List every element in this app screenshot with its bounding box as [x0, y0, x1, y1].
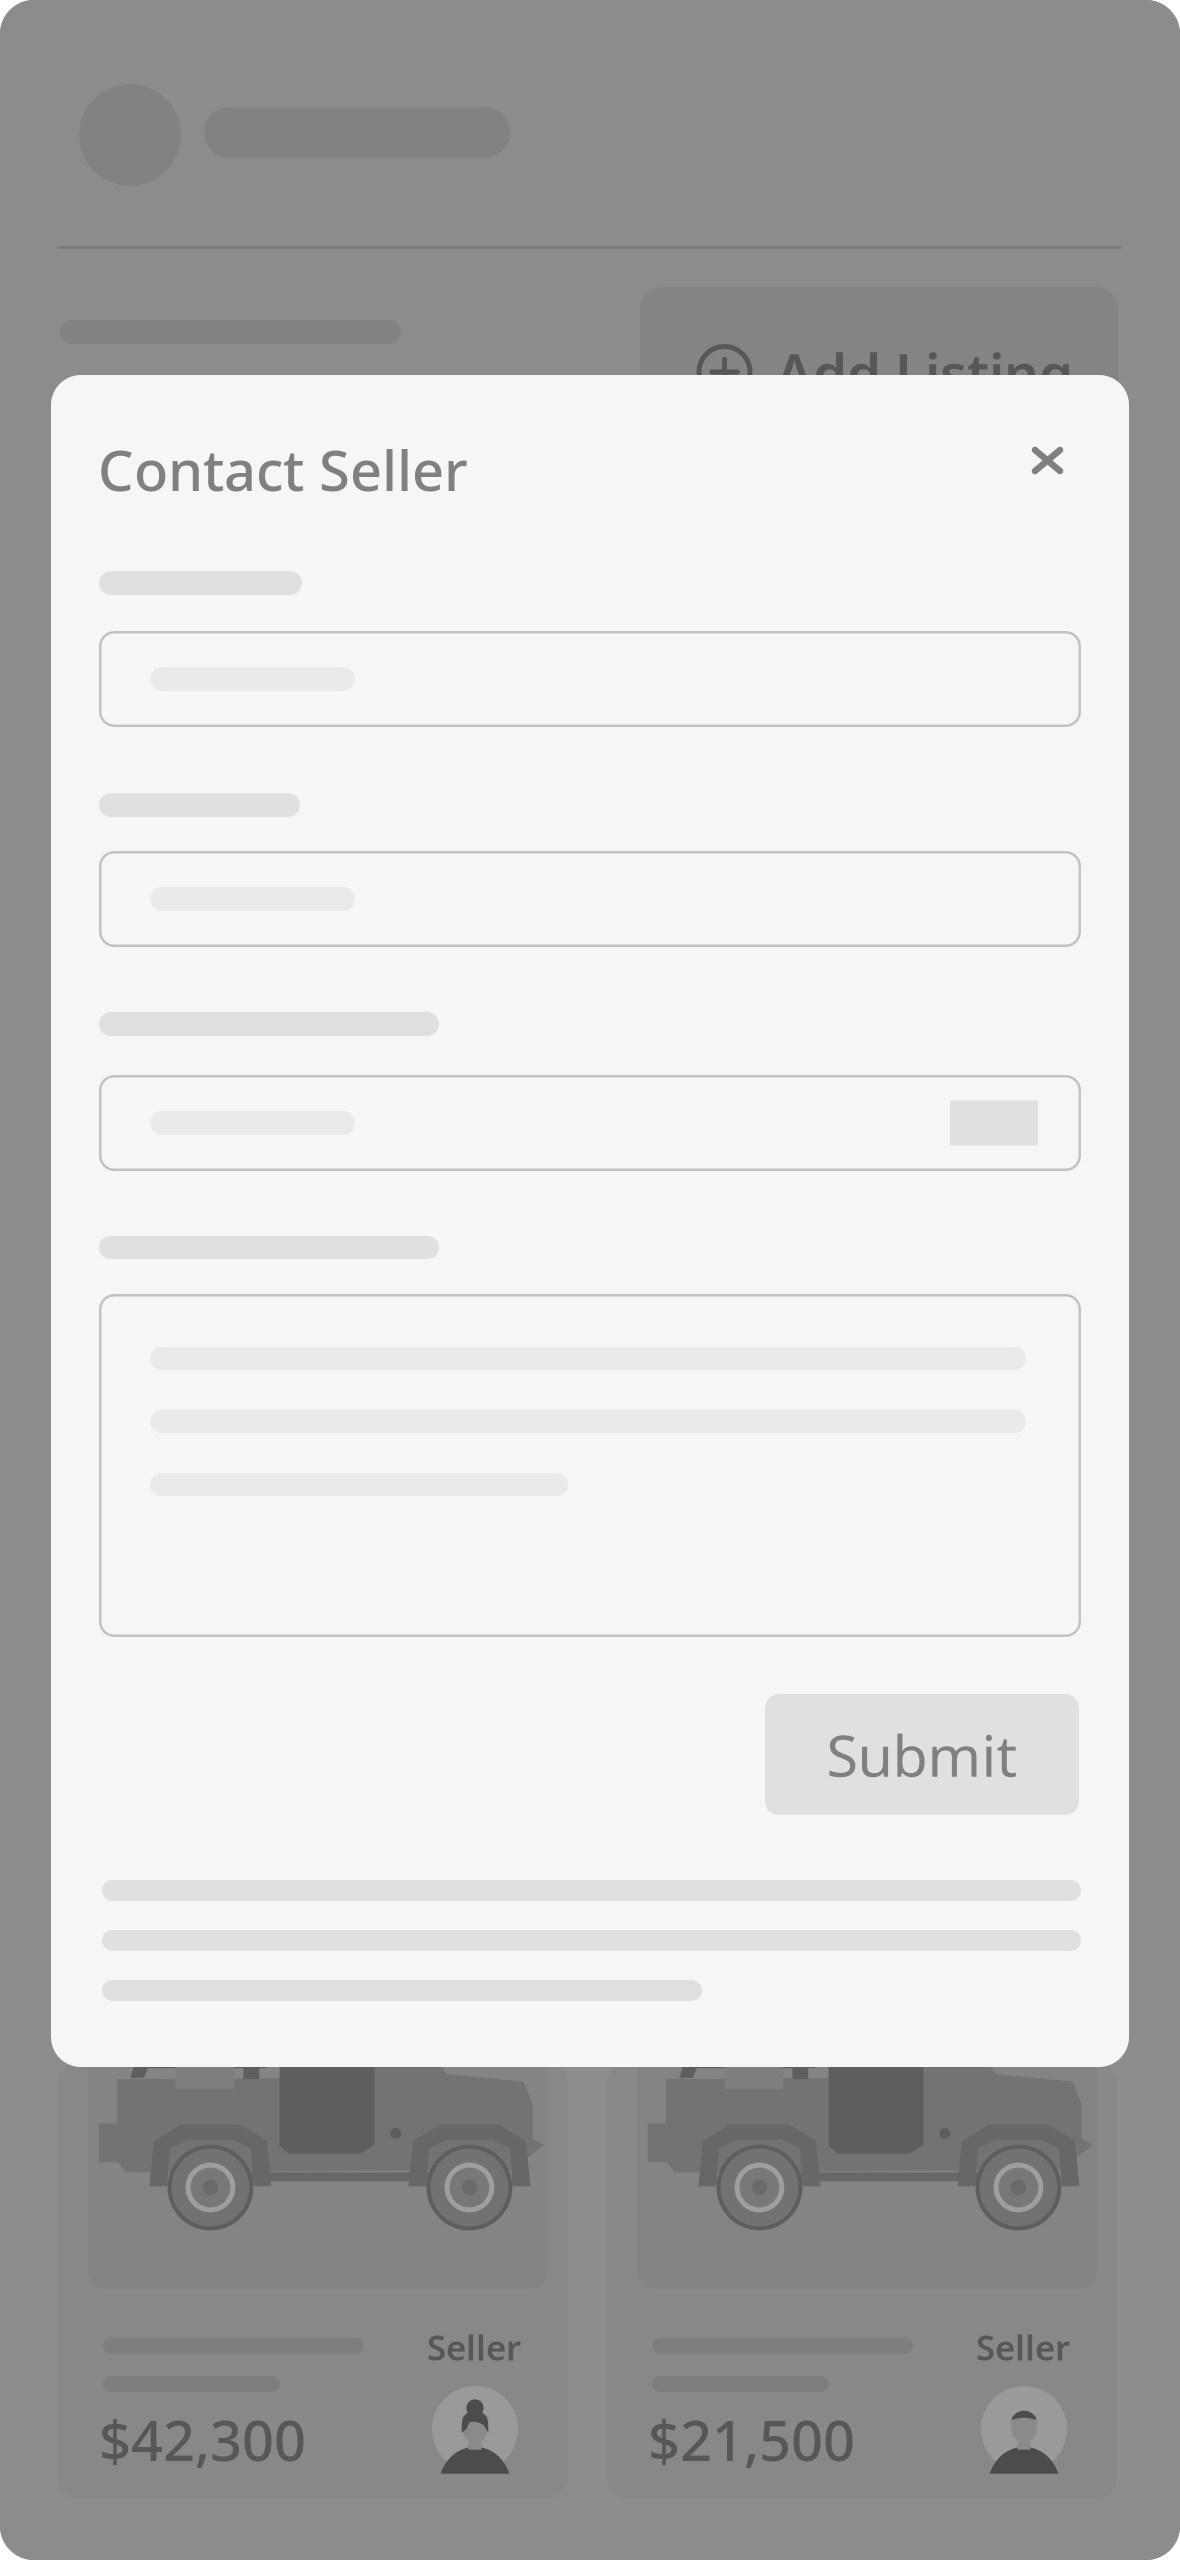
staticText: Add Listing	[776, 336, 1073, 408]
staticText: Contact Seller	[98, 432, 468, 506]
staticText: $21,500	[648, 2402, 855, 2476]
button[interactable]: $42,300	[58, 2062, 568, 2499]
staticText: Seller	[976, 2324, 1070, 2370]
button[interactable]: $21,500	[607, 2062, 1117, 2499]
staticText: $42,300	[99, 2402, 306, 2476]
button[interactable]: Close	[997, 412, 1098, 509]
staticText: Seller	[427, 2324, 521, 2370]
button[interactable]: Submit	[765, 1694, 1079, 1815]
button[interactable]: Add Listing	[640, 287, 1118, 457]
staticText: Submit	[826, 1716, 1017, 1792]
